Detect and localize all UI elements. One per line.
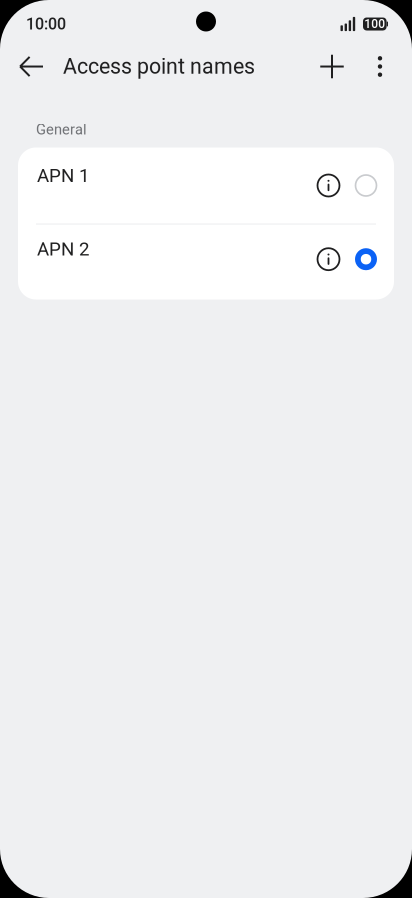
staticText: APN 1 <box>37 165 89 186</box>
staticText: 10:00 <box>26 15 66 33</box>
button[interactable]: Select APN 2 <box>347 221 385 297</box>
staticText: APN 2 <box>37 238 89 260</box>
button[interactable]: Add APN <box>307 43 357 89</box>
button[interactable]: Select APN 1 <box>347 147 385 223</box>
button[interactable]: APN 1 details <box>310 147 347 223</box>
staticText: 100 <box>364 17 385 31</box>
staticText: Access point names <box>63 54 255 79</box>
button[interactable]: More options <box>357 43 403 89</box>
staticText: General <box>36 121 87 138</box>
button[interactable]: APN 2 details <box>310 221 347 297</box>
button[interactable]: Navigate up <box>9 43 53 89</box>
